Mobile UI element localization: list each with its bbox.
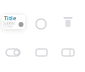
staticText: Subtitle — [3, 20, 15, 26]
button[interactable]: Toggle — [6, 49, 20, 56]
staticText: Detail — [3, 23, 13, 29]
button[interactable]: Title — [2, 15, 25, 29]
staticText: Title — [4, 15, 16, 22]
button[interactable]: Segmented control — [62, 49, 74, 56]
button[interactable]: Slider — [63, 17, 72, 27]
button[interactable]: Progress — [36, 19, 46, 29]
button[interactable]: Button — [36, 49, 47, 56]
